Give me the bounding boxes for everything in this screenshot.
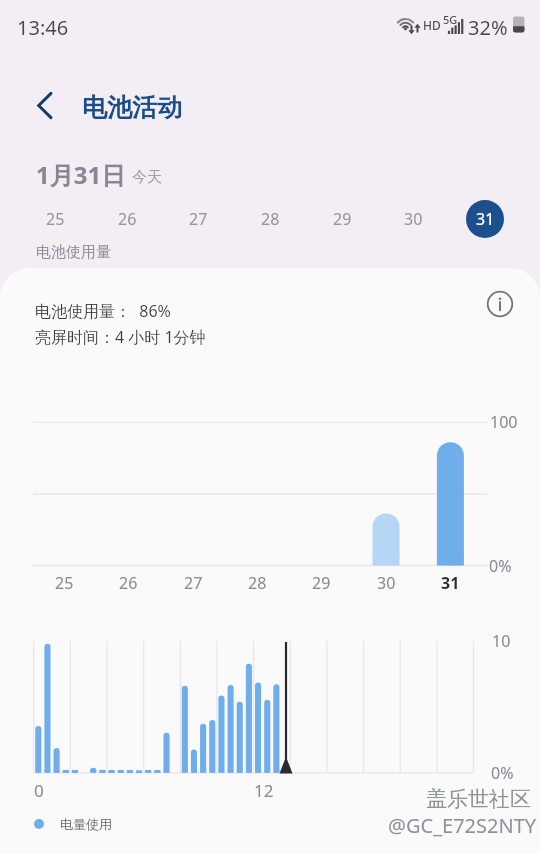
staticText: HD (423, 17, 441, 33)
button[interactable]: 27 (179, 200, 217, 238)
button[interactable]: 29 (323, 200, 361, 238)
staticText: 电池活动 (82, 92, 182, 123)
staticText: 0% (489, 555, 512, 577)
button[interactable]: 28 (251, 200, 289, 238)
staticText: 32% (468, 14, 508, 41)
staticText: 28 (248, 572, 267, 594)
staticText: 25 (55, 572, 74, 594)
staticText: 1月31日 (36, 158, 126, 191)
staticText: 31 (476, 208, 495, 230)
staticText: 26 (119, 572, 138, 594)
staticText: 今天 (132, 168, 162, 187)
staticText: 28 (261, 208, 280, 230)
staticText: 31 (441, 572, 460, 594)
button[interactable]: 31 (466, 200, 504, 238)
button[interactable]: 电量使用 (34, 816, 112, 832)
button[interactable]: Back (24, 85, 64, 125)
staticText: 0% (491, 762, 514, 784)
staticText: 26 (118, 208, 137, 230)
staticText: @GC_E72S2NTY (388, 812, 537, 839)
staticText: 27 (189, 208, 208, 230)
staticText: 0 (34, 779, 44, 802)
staticText: 10 (492, 630, 511, 652)
staticText: 12 (254, 779, 274, 802)
button[interactable]: 26 (108, 200, 146, 238)
staticText: 30 (377, 572, 396, 594)
staticText: 25 (46, 208, 65, 230)
staticText: 29 (333, 208, 352, 230)
button[interactable]: 25 (36, 200, 74, 238)
staticText: 27 (184, 572, 203, 594)
staticText: 5G (443, 12, 458, 27)
staticText: 电池使用量 (36, 243, 111, 262)
staticText: 13:46 (17, 14, 69, 41)
button[interactable]: Information (484, 288, 516, 320)
button[interactable]: 30 (394, 200, 432, 238)
staticText: 29 (312, 572, 331, 594)
staticText: 亮屏时间：4 小时 1分钟 (35, 326, 206, 348)
staticText: 电池使用量： 86% (35, 300, 171, 322)
staticText: 电量使用 (60, 816, 112, 832)
staticText: 盖乐世社区 (426, 786, 531, 812)
staticText: 30 (404, 208, 423, 230)
staticText: 100 (490, 411, 518, 433)
